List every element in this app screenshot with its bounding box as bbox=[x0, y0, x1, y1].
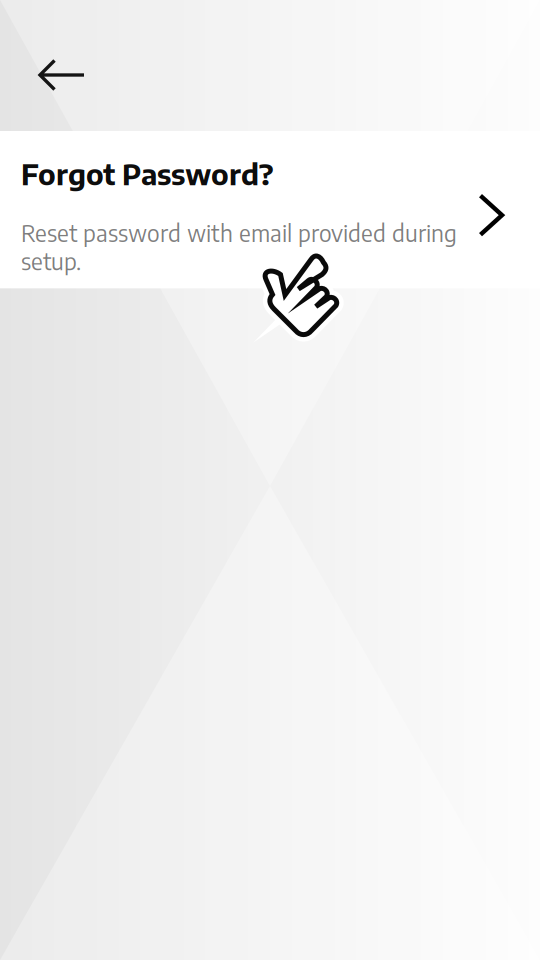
staticText: Forgot Password? bbox=[21, 155, 274, 192]
staticText: Reset password with email provided durin… bbox=[21, 219, 457, 275]
button[interactable]: Back bbox=[0, 0, 86, 131]
button[interactable]: Forgot Password? bbox=[0, 131, 540, 288]
